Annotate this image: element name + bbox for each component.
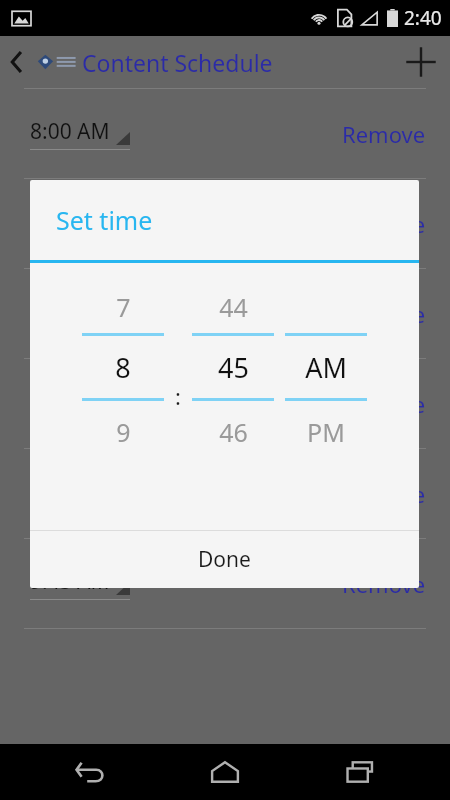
staticText: Remove	[342, 209, 426, 239]
staticText: Content Schedule	[82, 47, 273, 78]
staticText: Remove	[342, 119, 426, 149]
staticText: 44	[219, 290, 248, 324]
staticText: 45	[218, 349, 249, 386]
button[interactable]: Remove	[318, 201, 450, 247]
button[interactable]: 8:45 AM	[30, 207, 130, 240]
button[interactable]: Recent apps	[315, 744, 405, 800]
staticText: 2:40	[404, 5, 442, 31]
staticText: 46	[219, 415, 248, 449]
staticText: Remove	[342, 299, 426, 329]
button[interactable]: 9:15 AM	[0, 359, 450, 448]
button[interactable]: 44	[192, 281, 274, 463]
staticText: :	[175, 381, 181, 411]
button[interactable]: Add	[392, 36, 450, 88]
button[interactable]: 8:00 AM	[30, 117, 130, 150]
button[interactable]: 9:30 AM	[0, 449, 450, 538]
staticText: 9:45 AM	[30, 567, 110, 596]
button[interactable]: Back	[0, 36, 34, 88]
button[interactable]: 9:45 AM	[0, 539, 450, 628]
staticText: 8	[115, 349, 131, 386]
button[interactable]: AM	[285, 281, 367, 463]
button[interactable]: 9:15 AM	[30, 387, 130, 420]
button[interactable]: Remove	[318, 381, 450, 427]
staticText: Done	[198, 545, 251, 574]
button[interactable]: Done	[30, 531, 419, 588]
button[interactable]: 8:45 AM	[0, 179, 450, 268]
button[interactable]: Remove	[318, 471, 450, 517]
button[interactable]: 8:00 AM	[0, 89, 450, 178]
staticText: 8:45 AM	[30, 207, 110, 236]
staticText: 9	[116, 415, 131, 449]
button[interactable]: Remove	[318, 111, 450, 157]
button[interactable]: Back	[45, 744, 135, 800]
button[interactable]: Remove	[318, 291, 450, 337]
button[interactable]: 9:45 AM	[30, 567, 130, 600]
staticText: 9:15 AM	[30, 387, 110, 416]
staticText: PM	[307, 415, 345, 449]
button[interactable]: 9:00 AM	[0, 269, 450, 358]
button[interactable]: 7	[82, 281, 164, 463]
staticText: Remove	[342, 389, 426, 419]
button[interactable]: Home	[180, 744, 270, 800]
staticText: Remove	[342, 569, 426, 599]
staticText: AM	[305, 349, 347, 386]
staticText: 8:00 AM	[30, 117, 110, 146]
button[interactable]: 9:00 AM	[30, 297, 130, 330]
staticText: Set time	[56, 203, 153, 237]
staticText: 7	[116, 290, 131, 324]
staticText: Remove	[342, 479, 426, 509]
button[interactable]: Remove	[318, 561, 450, 607]
